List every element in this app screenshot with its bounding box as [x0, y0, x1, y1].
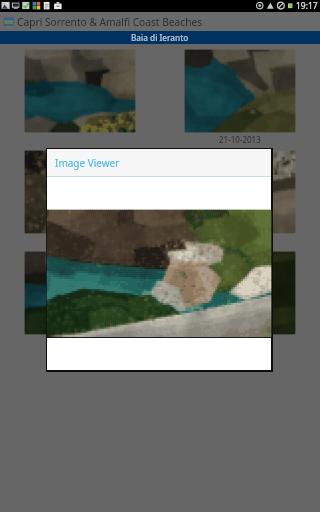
button[interactable]: Capri Sorrento & Amalfi Coast Beaches [0, 12, 320, 31]
button[interactable]: Photo 5 [0, 252, 160, 336]
button[interactable]: Baia di Ieranto [0, 31, 320, 44]
button[interactable]: Photo 4 [160, 151, 320, 235]
staticText: Image Viewer [55, 156, 120, 170]
button[interactable]: Photo 6 [160, 252, 320, 336]
button[interactable]: Photo 1 [0, 50, 160, 134]
staticText: 19:17 [296, 0, 318, 12]
button[interactable]: Image Viewer [47, 149, 271, 370]
staticText: Capri Sorrento & Amalfi Coast Beaches [17, 15, 203, 29]
button[interactable]: Photo 3 [0, 151, 160, 235]
button[interactable]: Photo 2, 21-10-2013 [160, 50, 320, 145]
staticText: Baia di Ieranto [131, 32, 189, 43]
staticText: 21-10-2013 [219, 134, 261, 145]
